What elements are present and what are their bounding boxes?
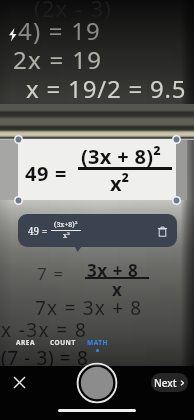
staticText: 3x + 8 <box>87 259 139 282</box>
staticText: 7 = <box>37 262 65 285</box>
button[interactable]: COUNT <box>49 338 77 352</box>
button[interactable]: Delete <box>153 222 171 240</box>
button[interactable]: Take photo <box>77 363 117 403</box>
staticText: COUNT <box>50 338 76 347</box>
button[interactable]: Close <box>8 371 30 393</box>
staticText: 7x = 3x + 8 <box>35 295 143 321</box>
button[interactable]: Next <box>151 373 188 392</box>
button[interactable]: Flash auto <box>1 22 25 46</box>
staticText: 4) = 19 <box>18 14 101 47</box>
button[interactable]: MATH <box>86 338 109 352</box>
staticText: x <box>112 278 122 301</box>
staticText: x² <box>110 170 130 197</box>
staticText: 2x = 19 <box>13 43 103 76</box>
staticText: (7 - 3) = 8 <box>1 345 89 371</box>
staticText: AREA <box>16 338 35 347</box>
staticText: 49 = <box>25 160 67 187</box>
staticText: MATH <box>87 338 108 347</box>
staticText: (3x+8)² <box>54 220 78 230</box>
staticText: 49 = <box>28 224 48 238</box>
button[interactable]: 49 = <box>18 214 177 247</box>
staticText: x = 19/2 = 9.5 <box>26 72 187 105</box>
staticText: x² <box>63 231 70 241</box>
staticText: (3x + 8)² <box>81 143 162 170</box>
staticText: Next <box>154 376 177 390</box>
staticText: x -3x = 8 <box>1 317 88 343</box>
staticText: (2x - 3) <box>34 0 113 23</box>
button[interactable]: AREA <box>15 338 36 352</box>
